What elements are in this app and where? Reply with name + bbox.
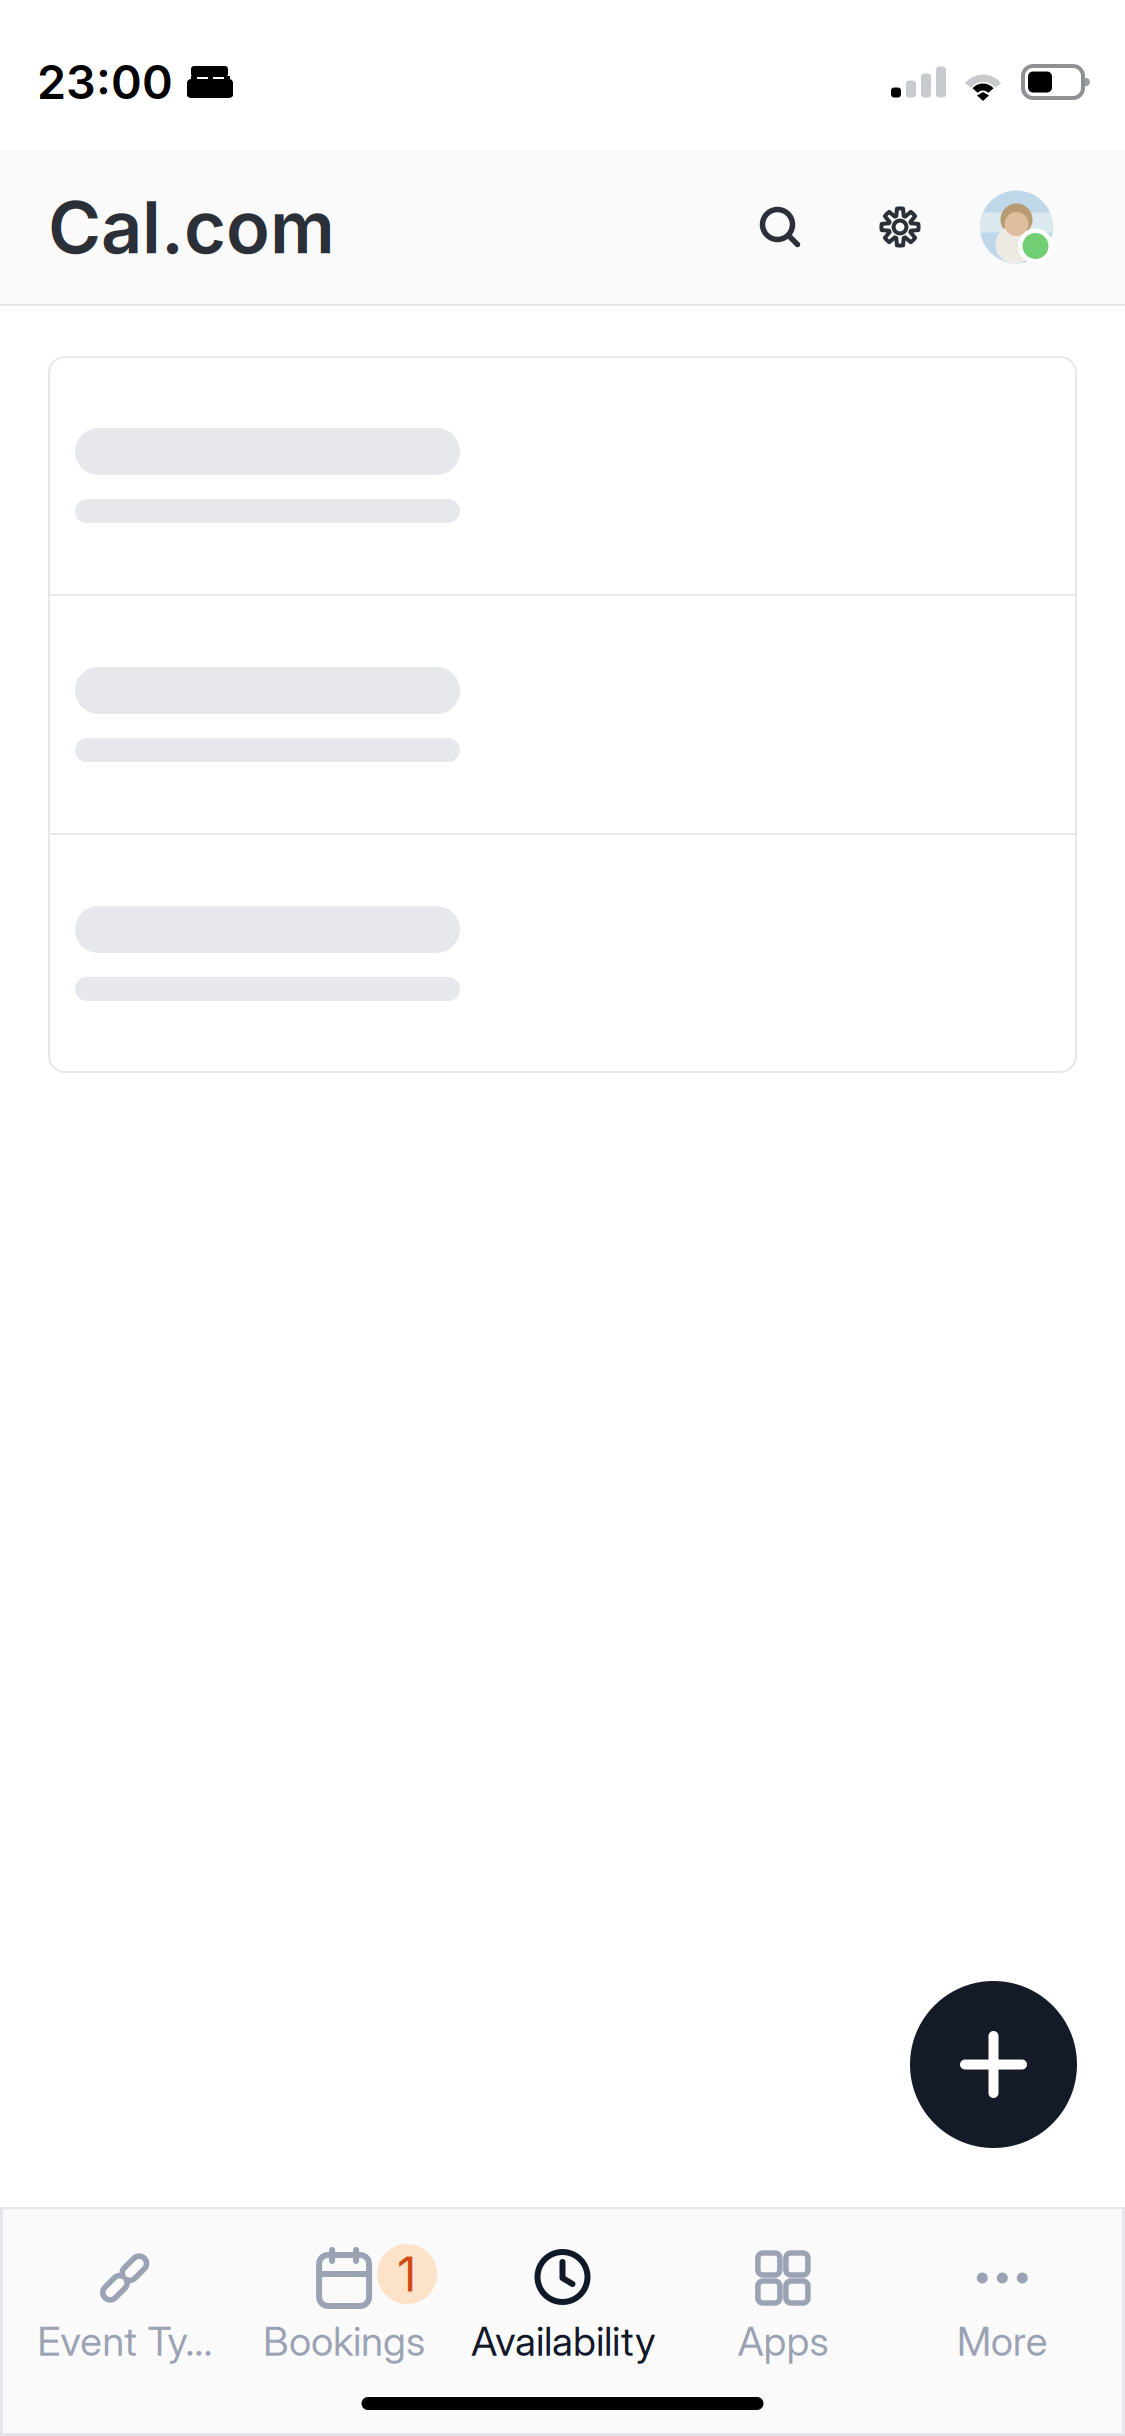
button[interactable]: 1 xyxy=(234,2209,454,2365)
button[interactable]: Event Ty… xyxy=(15,2209,234,2365)
staticText: Apps xyxy=(737,2317,828,2365)
staticText: Availability xyxy=(471,2317,656,2365)
staticText: Cal.com xyxy=(48,183,335,270)
staticText: 1 xyxy=(397,2245,417,2303)
staticText: 23:00 xyxy=(37,54,173,110)
button[interactable]: Apps xyxy=(673,2209,893,2365)
staticText: Event Ty… xyxy=(37,2317,212,2365)
button[interactable]: Settings xyxy=(840,150,960,304)
button[interactable]: Search xyxy=(720,150,840,304)
staticText: More xyxy=(957,2317,1048,2365)
button[interactable]: Account xyxy=(960,150,1073,304)
button[interactable]: Availability xyxy=(454,2209,673,2365)
button[interactable]: Create new xyxy=(910,1981,1077,2148)
button[interactable]: More xyxy=(893,2209,1112,2365)
staticText: Bookings xyxy=(263,2317,425,2365)
